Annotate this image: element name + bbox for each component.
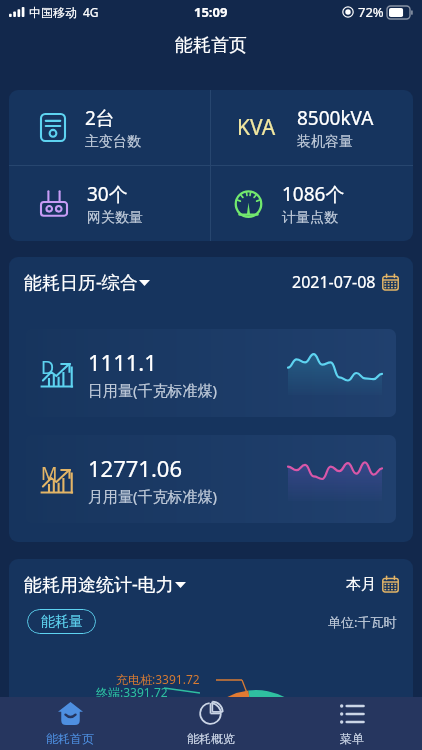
staticText: 能耗日历-综合 bbox=[24, 270, 138, 295]
other: 菜单 bbox=[340, 704, 364, 724]
staticText: 充电桩:3391.72 bbox=[116, 671, 200, 687]
staticText: 12771.06 bbox=[88, 453, 182, 483]
button[interactable]: 能耗日历-综合 bbox=[24, 270, 150, 295]
button[interactable]: KVA bbox=[211, 90, 413, 165]
button[interactable]: 1086个 bbox=[211, 166, 413, 241]
staticText: 日用量(千克标准煤) bbox=[88, 380, 218, 400]
staticText: 中国移动 bbox=[29, 5, 77, 20]
staticText: 能耗概览 bbox=[187, 731, 235, 746]
staticText: 2021-07-08 bbox=[292, 271, 376, 293]
button[interactable]: 能耗概览 bbox=[140, 697, 281, 750]
staticText: 能耗首页 bbox=[175, 34, 247, 57]
button[interactable]: D bbox=[26, 329, 396, 417]
button[interactable]: 菜单 bbox=[281, 697, 422, 750]
staticText: 装机容量 bbox=[297, 133, 353, 151]
button[interactable]: 2021-07-08 bbox=[292, 271, 399, 293]
other: 能耗概览 bbox=[199, 702, 222, 725]
staticText: 终端:3391.72 bbox=[96, 684, 168, 700]
staticText: 能耗用途统计-电力 bbox=[24, 572, 174, 597]
staticText: 本月 bbox=[346, 575, 376, 594]
staticText: 1086个 bbox=[282, 181, 345, 207]
staticText: 网关数量 bbox=[87, 209, 143, 227]
staticText: 30个 bbox=[87, 181, 128, 207]
button[interactable]: 30个 bbox=[9, 166, 210, 241]
button[interactable]: 2台 bbox=[9, 90, 210, 165]
button[interactable]: 能耗量 bbox=[27, 609, 96, 634]
staticText: 72% bbox=[358, 3, 384, 21]
staticText: D bbox=[41, 355, 55, 380]
staticText: 8500kVA bbox=[297, 105, 374, 131]
button[interactable]: 本月 bbox=[346, 575, 399, 594]
staticText: 能耗量 bbox=[41, 613, 83, 631]
staticText: 主变台数 bbox=[85, 133, 141, 151]
staticText: 菜单 bbox=[340, 731, 364, 746]
staticText: 15:09 bbox=[194, 3, 228, 21]
staticText: 月用量(千克标准煤) bbox=[88, 486, 218, 506]
staticText: 计量点数 bbox=[282, 209, 338, 227]
button[interactable]: M bbox=[26, 435, 396, 523]
staticText: 4G bbox=[83, 4, 99, 20]
staticText: KVA bbox=[237, 113, 276, 142]
staticText: M bbox=[41, 461, 58, 486]
staticText: 单位:千瓦时 bbox=[328, 613, 397, 631]
button[interactable]: 能耗用途统计-电力 bbox=[24, 572, 186, 597]
staticText: 1111.1 bbox=[88, 347, 157, 377]
staticText: 能耗首页 bbox=[46, 731, 94, 746]
staticText: 2台 bbox=[85, 105, 115, 131]
button[interactable]: 能耗首页 bbox=[0, 697, 140, 750]
other: 能耗首页 bbox=[58, 702, 83, 725]
